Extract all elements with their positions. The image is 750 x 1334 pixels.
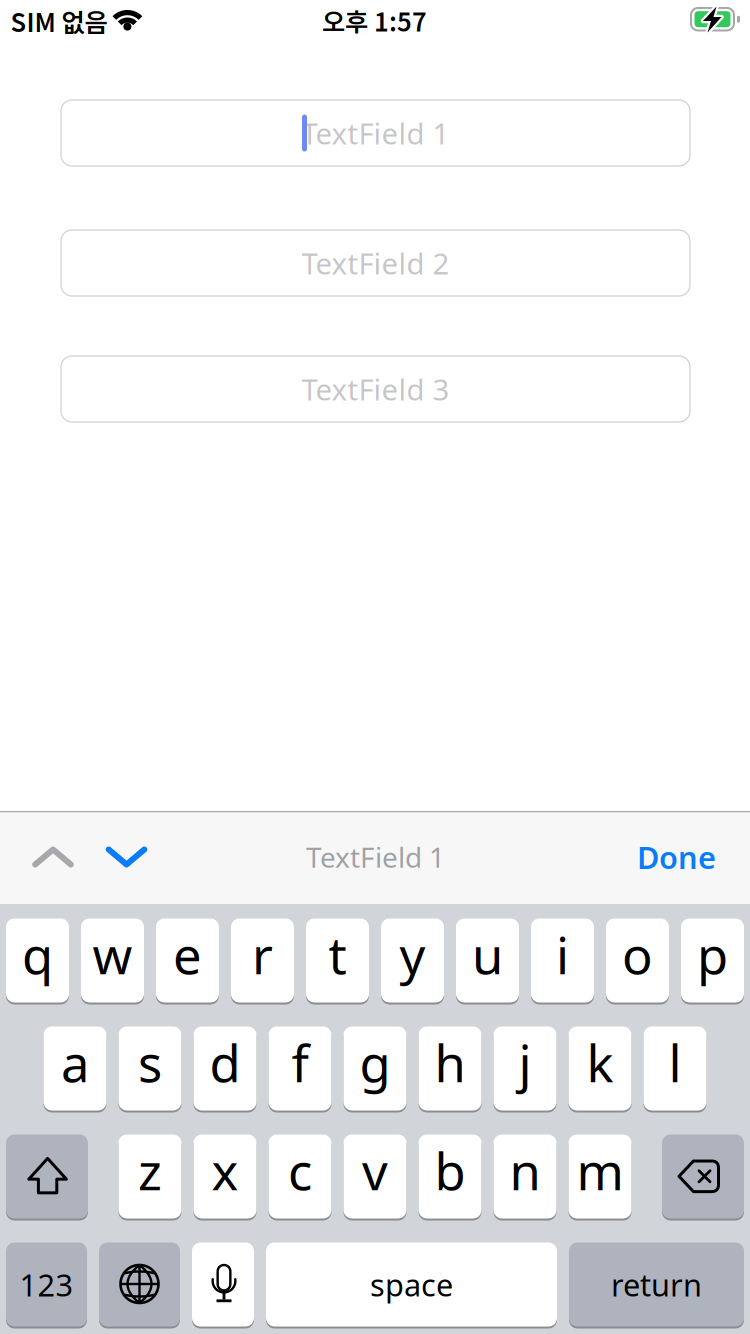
button[interactable]: r: [231, 918, 294, 1002]
button[interactable]: t: [306, 918, 369, 1002]
button[interactable]: TextField 2: [61, 230, 690, 296]
button[interactable]: return: [569, 1242, 744, 1326]
staticText: v: [362, 1137, 388, 1204]
button[interactable]: i: [531, 918, 594, 1002]
button[interactable]: b: [418, 1134, 481, 1218]
staticText: k: [586, 1029, 613, 1096]
staticText: r: [252, 921, 273, 988]
button[interactable]: s: [118, 1026, 181, 1110]
button[interactable]: n: [493, 1134, 556, 1218]
button[interactable]: k: [568, 1026, 631, 1110]
button[interactable]: e: [156, 918, 219, 1002]
button[interactable]: Delete: [662, 1134, 744, 1218]
staticText: return: [611, 1264, 702, 1305]
button[interactable]: TextField 3: [61, 356, 690, 422]
staticText: y: [399, 921, 425, 988]
staticText: p: [697, 921, 728, 988]
staticText: Done: [637, 837, 716, 877]
staticText: TextField 3: [301, 369, 449, 408]
staticText: b: [434, 1137, 465, 1204]
staticText: a: [61, 1029, 89, 1096]
button[interactable]: f: [268, 1026, 331, 1110]
button[interactable]: Previous field: [18, 821, 88, 891]
staticText: e: [173, 921, 202, 988]
staticText: c: [288, 1137, 312, 1204]
staticText: q: [22, 921, 53, 988]
staticText: z: [138, 1137, 162, 1204]
staticText: o: [622, 921, 653, 988]
button[interactable]: Next keyboard: [99, 1242, 180, 1326]
staticText: l: [668, 1029, 681, 1096]
staticText: t: [328, 921, 346, 988]
staticText: s: [138, 1029, 162, 1096]
staticText: d: [209, 1029, 240, 1096]
button[interactable]: w: [81, 918, 144, 1002]
button[interactable]: y: [381, 918, 444, 1002]
button[interactable]: v: [343, 1134, 406, 1218]
staticText: space: [370, 1264, 453, 1305]
button[interactable]: 123: [6, 1242, 87, 1326]
staticText: TextField 1: [306, 838, 445, 876]
button[interactable]: c: [268, 1134, 331, 1218]
button[interactable]: space: [266, 1242, 557, 1326]
button[interactable]: u: [456, 918, 519, 1002]
button[interactable]: l: [643, 1026, 706, 1110]
button[interactable]: o: [606, 918, 669, 1002]
button[interactable]: a: [43, 1026, 106, 1110]
staticText: h: [434, 1029, 465, 1096]
staticText: n: [509, 1137, 540, 1204]
button[interactable]: x: [193, 1134, 256, 1218]
staticText: x: [211, 1137, 238, 1204]
staticText: 123: [19, 1264, 73, 1305]
staticText: TextField 2: [301, 243, 449, 282]
staticText: u: [472, 921, 503, 988]
staticText: w: [92, 921, 132, 988]
button[interactable]: m: [568, 1134, 631, 1218]
button[interactable]: Done: [637, 837, 716, 877]
button[interactable]: Dictate: [192, 1242, 254, 1326]
button[interactable]: Next field: [91, 821, 161, 891]
button[interactable]: p: [681, 918, 744, 1002]
staticText: i: [556, 921, 569, 988]
staticText: SIM 없음: [10, 3, 107, 39]
button[interactable]: j: [493, 1026, 556, 1110]
button[interactable]: g: [343, 1026, 406, 1110]
button[interactable]: TextField 1: [61, 100, 690, 166]
button[interactable]: h: [418, 1026, 481, 1110]
staticText: f: [291, 1029, 308, 1096]
staticText: j: [518, 1029, 531, 1096]
staticText: 오후 1:57: [322, 2, 427, 39]
staticText: m: [576, 1137, 623, 1204]
button[interactable]: q: [6, 918, 69, 1002]
staticText: TextField 1: [301, 113, 449, 152]
button[interactable]: d: [193, 1026, 256, 1110]
staticText: g: [359, 1029, 390, 1096]
button[interactable]: Shift: [6, 1134, 88, 1218]
button[interactable]: z: [118, 1134, 181, 1218]
